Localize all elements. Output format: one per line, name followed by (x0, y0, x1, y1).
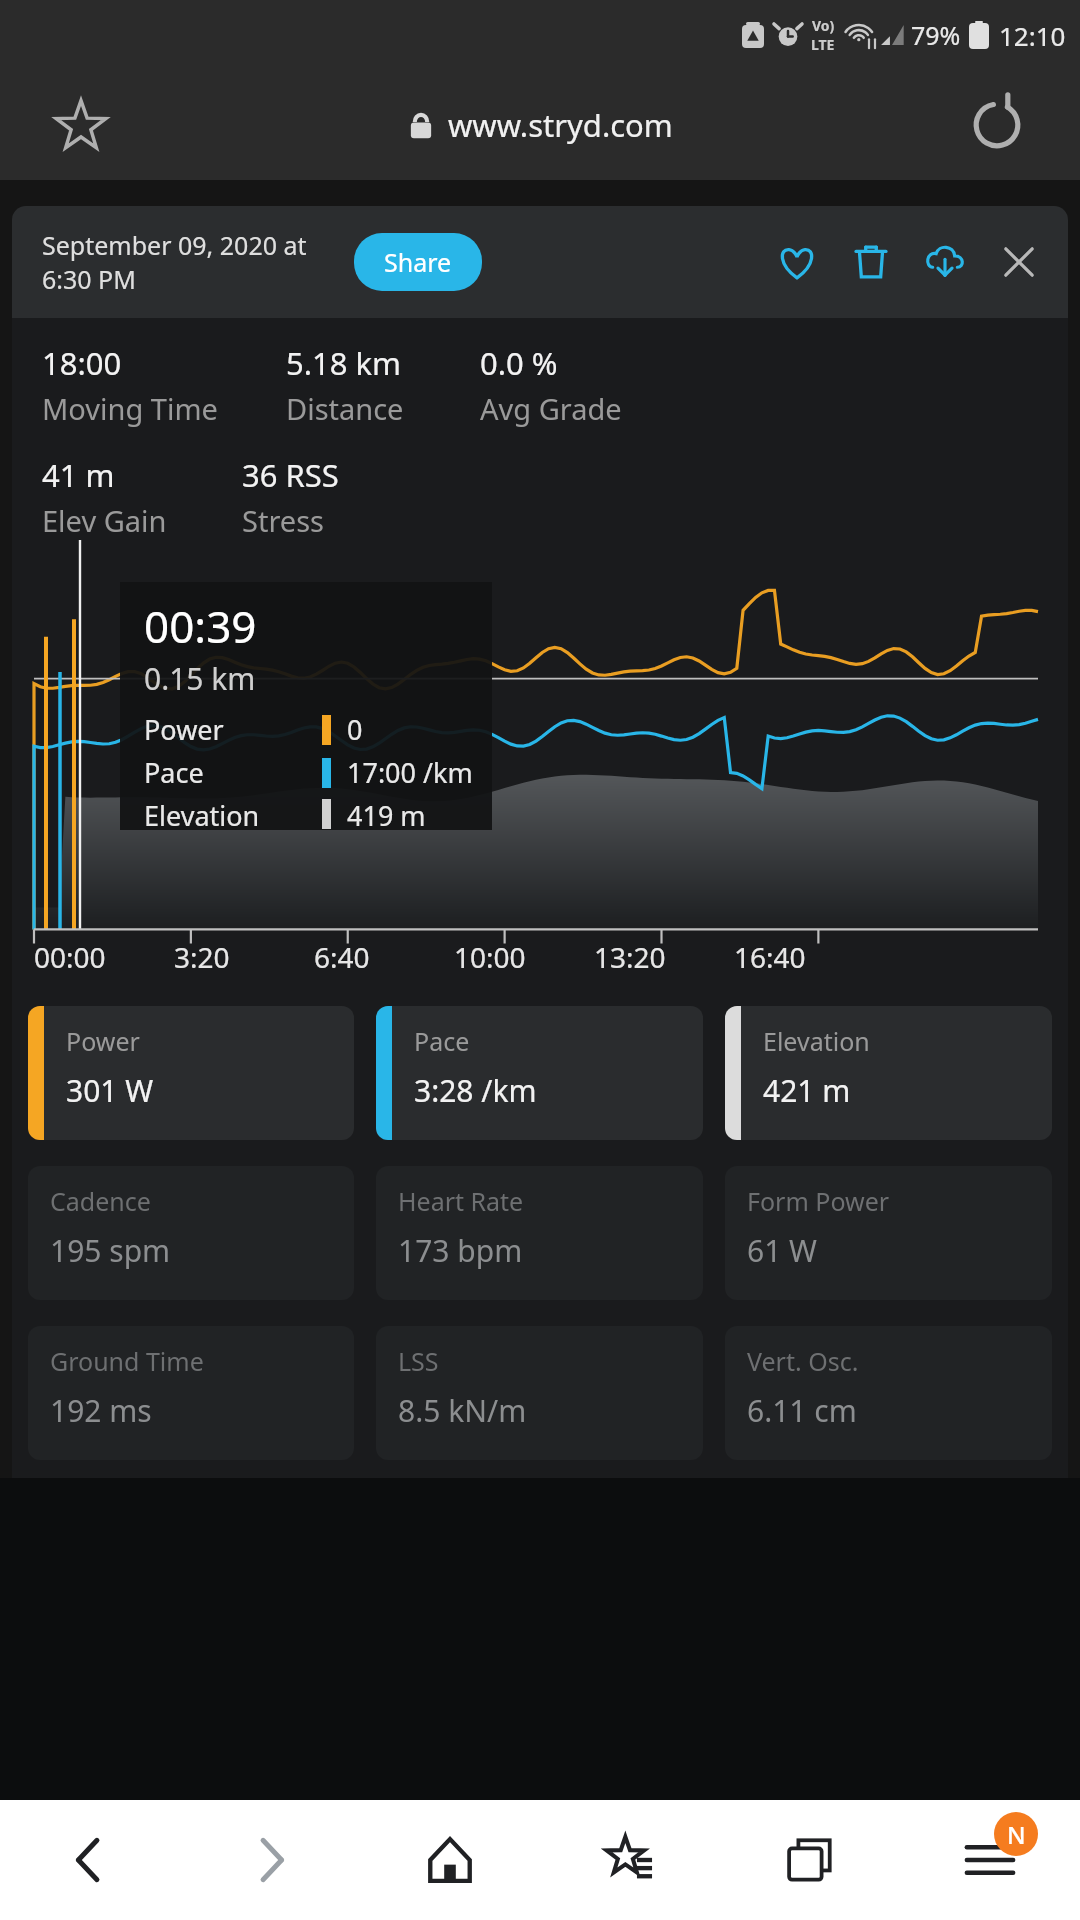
staticText: Ground Time (50, 1344, 204, 1378)
staticText: 61 W (747, 1230, 818, 1271)
button[interactable]: Ground Time (28, 1326, 354, 1460)
staticText: 17:00 /km (347, 754, 473, 791)
staticText: Distance (286, 389, 404, 428)
button[interactable]: Menu (900, 1800, 1080, 1920)
staticText: Vert. Osc. (747, 1344, 859, 1378)
staticText: Share (384, 245, 452, 279)
button[interactable]: Tabs (720, 1800, 900, 1920)
button[interactable]: LSS (376, 1326, 703, 1460)
staticText: Moving Time (42, 389, 218, 428)
staticText: 13:20 (594, 938, 734, 976)
staticText: 5.18 km (286, 342, 402, 384)
staticText: 173 bpm (398, 1230, 523, 1271)
button[interactable]: Close (992, 235, 1046, 289)
staticText: 301 W (66, 1070, 154, 1111)
button[interactable]: Forward (180, 1800, 360, 1920)
button[interactable]: Back (0, 1800, 180, 1920)
button[interactable]: Bookmarks (540, 1800, 720, 1920)
staticText: 18:00 (42, 342, 122, 384)
staticText: 6.11 cm (747, 1390, 857, 1431)
staticText: September 09, 2020 at 6:30 PM (42, 228, 342, 296)
staticText: 3:20 (174, 938, 314, 976)
staticText: Power (144, 711, 322, 748)
button[interactable]: Power (28, 1006, 354, 1140)
button[interactable]: Vert. Osc. (725, 1326, 1052, 1460)
staticText: 0.15 km (144, 658, 256, 699)
staticText: 0.0 % (480, 342, 558, 384)
staticText: Stress (242, 501, 324, 540)
button[interactable]: Bookmark (46, 90, 116, 160)
staticText: Heart Rate (398, 1184, 524, 1218)
staticText: Cadence (50, 1184, 151, 1218)
staticText: Pace (144, 754, 322, 791)
staticText: 195 spm (50, 1230, 171, 1271)
staticText: 3:28 /km (414, 1070, 537, 1111)
staticText: LTE (811, 35, 835, 54)
staticText: 8.5 kN/m (398, 1390, 527, 1431)
staticText: 0 (347, 711, 363, 748)
staticText: 00:39 (144, 596, 257, 656)
button[interactable]: Cadence (28, 1166, 354, 1300)
button[interactable]: Favorite (770, 235, 824, 289)
staticText: Elevation (763, 1024, 870, 1058)
staticText: 16:40 (734, 938, 874, 976)
button[interactable]: Home (360, 1800, 540, 1920)
staticText: Form Power (747, 1184, 890, 1218)
button[interactable]: Share (354, 233, 482, 291)
staticText: 421 m (763, 1070, 851, 1111)
staticText: LSS (398, 1344, 439, 1378)
staticText: 00:00 (34, 938, 174, 976)
staticText: 192 ms (50, 1390, 152, 1431)
button[interactable]: Heart Rate (376, 1166, 703, 1300)
staticText: Pace (414, 1024, 470, 1058)
staticText: 12:10 (999, 18, 1066, 53)
staticText: 10:00 (454, 938, 594, 976)
button[interactable]: www.stryd.com (408, 104, 673, 146)
button[interactable]: Pace (376, 1006, 703, 1140)
staticText: www.stryd.com (448, 104, 673, 146)
staticText: 36 RSS (242, 454, 339, 496)
button[interactable]: Download (918, 235, 972, 289)
staticText: 79% (911, 18, 961, 52)
staticText: Elev Gain (42, 501, 167, 540)
button[interactable]: Delete (844, 235, 898, 289)
staticText: Elevation (144, 797, 322, 830)
staticText: 6:40 (314, 938, 454, 976)
button[interactable]: Reload (962, 90, 1032, 160)
button[interactable]: Form Power (725, 1166, 1052, 1300)
staticText: Avg Grade (480, 389, 622, 428)
staticText: 419 m (347, 797, 426, 830)
button[interactable]: Elevation (725, 1006, 1052, 1140)
staticText: Power (66, 1024, 140, 1058)
staticText: N (1007, 1818, 1026, 1851)
staticText: Vo) (812, 16, 835, 35)
staticText: 41 m (42, 454, 115, 496)
